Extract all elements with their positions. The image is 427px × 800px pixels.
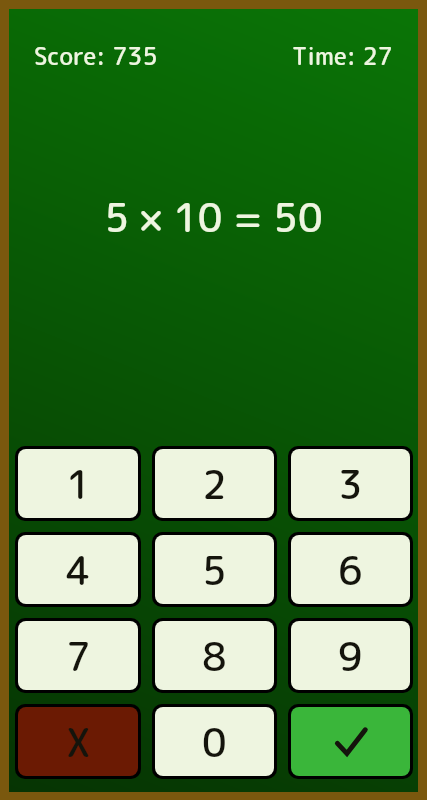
button[interactable]: 2 bbox=[155, 449, 274, 518]
staticText: X bbox=[66, 715, 91, 769]
button[interactable]: 8 bbox=[155, 621, 274, 690]
staticText: 1 bbox=[66, 457, 91, 511]
button[interactable]: 7 bbox=[18, 621, 138, 690]
staticText: 5 × 10 = 50 bbox=[9, 190, 418, 244]
staticText: 4 bbox=[66, 543, 91, 597]
button[interactable]: X bbox=[18, 707, 138, 776]
staticText: 2 bbox=[202, 457, 227, 511]
staticText: 5 bbox=[202, 543, 227, 597]
button[interactable]: 9 bbox=[291, 621, 410, 690]
button[interactable]: 6 bbox=[291, 535, 410, 604]
button[interactable]: 4 bbox=[18, 535, 138, 604]
button[interactable]: 5 bbox=[155, 535, 274, 604]
staticText: 0 bbox=[202, 715, 227, 769]
button[interactable]: 1 bbox=[18, 449, 138, 518]
staticText: 8 bbox=[202, 629, 227, 683]
button[interactable]: 0 bbox=[155, 707, 274, 776]
staticText: Score: 735 bbox=[34, 39, 158, 72]
button[interactable]: 3 bbox=[291, 449, 410, 518]
staticText: 9 bbox=[338, 629, 363, 683]
staticText: Time: 27 bbox=[292, 39, 393, 72]
staticText: 3 bbox=[338, 457, 363, 511]
staticText: 7 bbox=[66, 629, 91, 683]
staticText: 6 bbox=[338, 543, 363, 597]
button[interactable]: Submit answer bbox=[291, 707, 410, 776]
